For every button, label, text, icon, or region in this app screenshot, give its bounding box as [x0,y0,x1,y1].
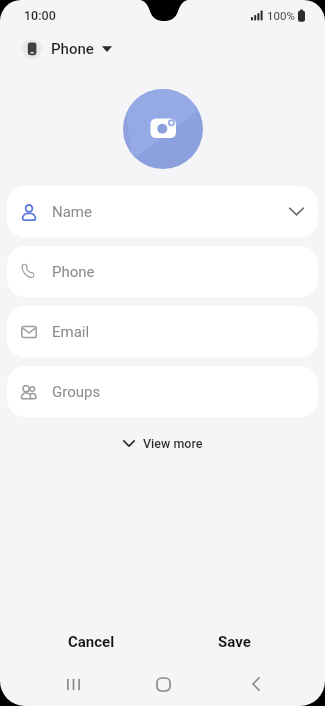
button[interactable] [57,668,89,700]
button[interactable]: Cancel [31,622,151,662]
button[interactable]: Phone [7,246,318,297]
staticText: Cancel [68,633,115,651]
staticText: 100% [267,9,295,22]
staticText: 10:00 [24,8,56,23]
button[interactable]: View more [123,431,203,455]
button[interactable]: Groups [7,366,318,417]
button[interactable]: Name [7,186,318,237]
button[interactable] [147,668,179,700]
button[interactable] [240,668,272,700]
button[interactable] [123,89,203,169]
button[interactable]: Save [174,622,294,662]
staticText: Name [52,203,92,221]
button[interactable]: Phone [22,39,112,59]
staticText: View more [143,436,203,451]
button[interactable]: Email [7,306,318,357]
staticText: Email [52,323,90,341]
staticText: Groups [52,383,101,401]
staticText: Save [218,633,251,651]
staticText: Phone [52,263,95,281]
staticText: Phone [51,40,94,58]
